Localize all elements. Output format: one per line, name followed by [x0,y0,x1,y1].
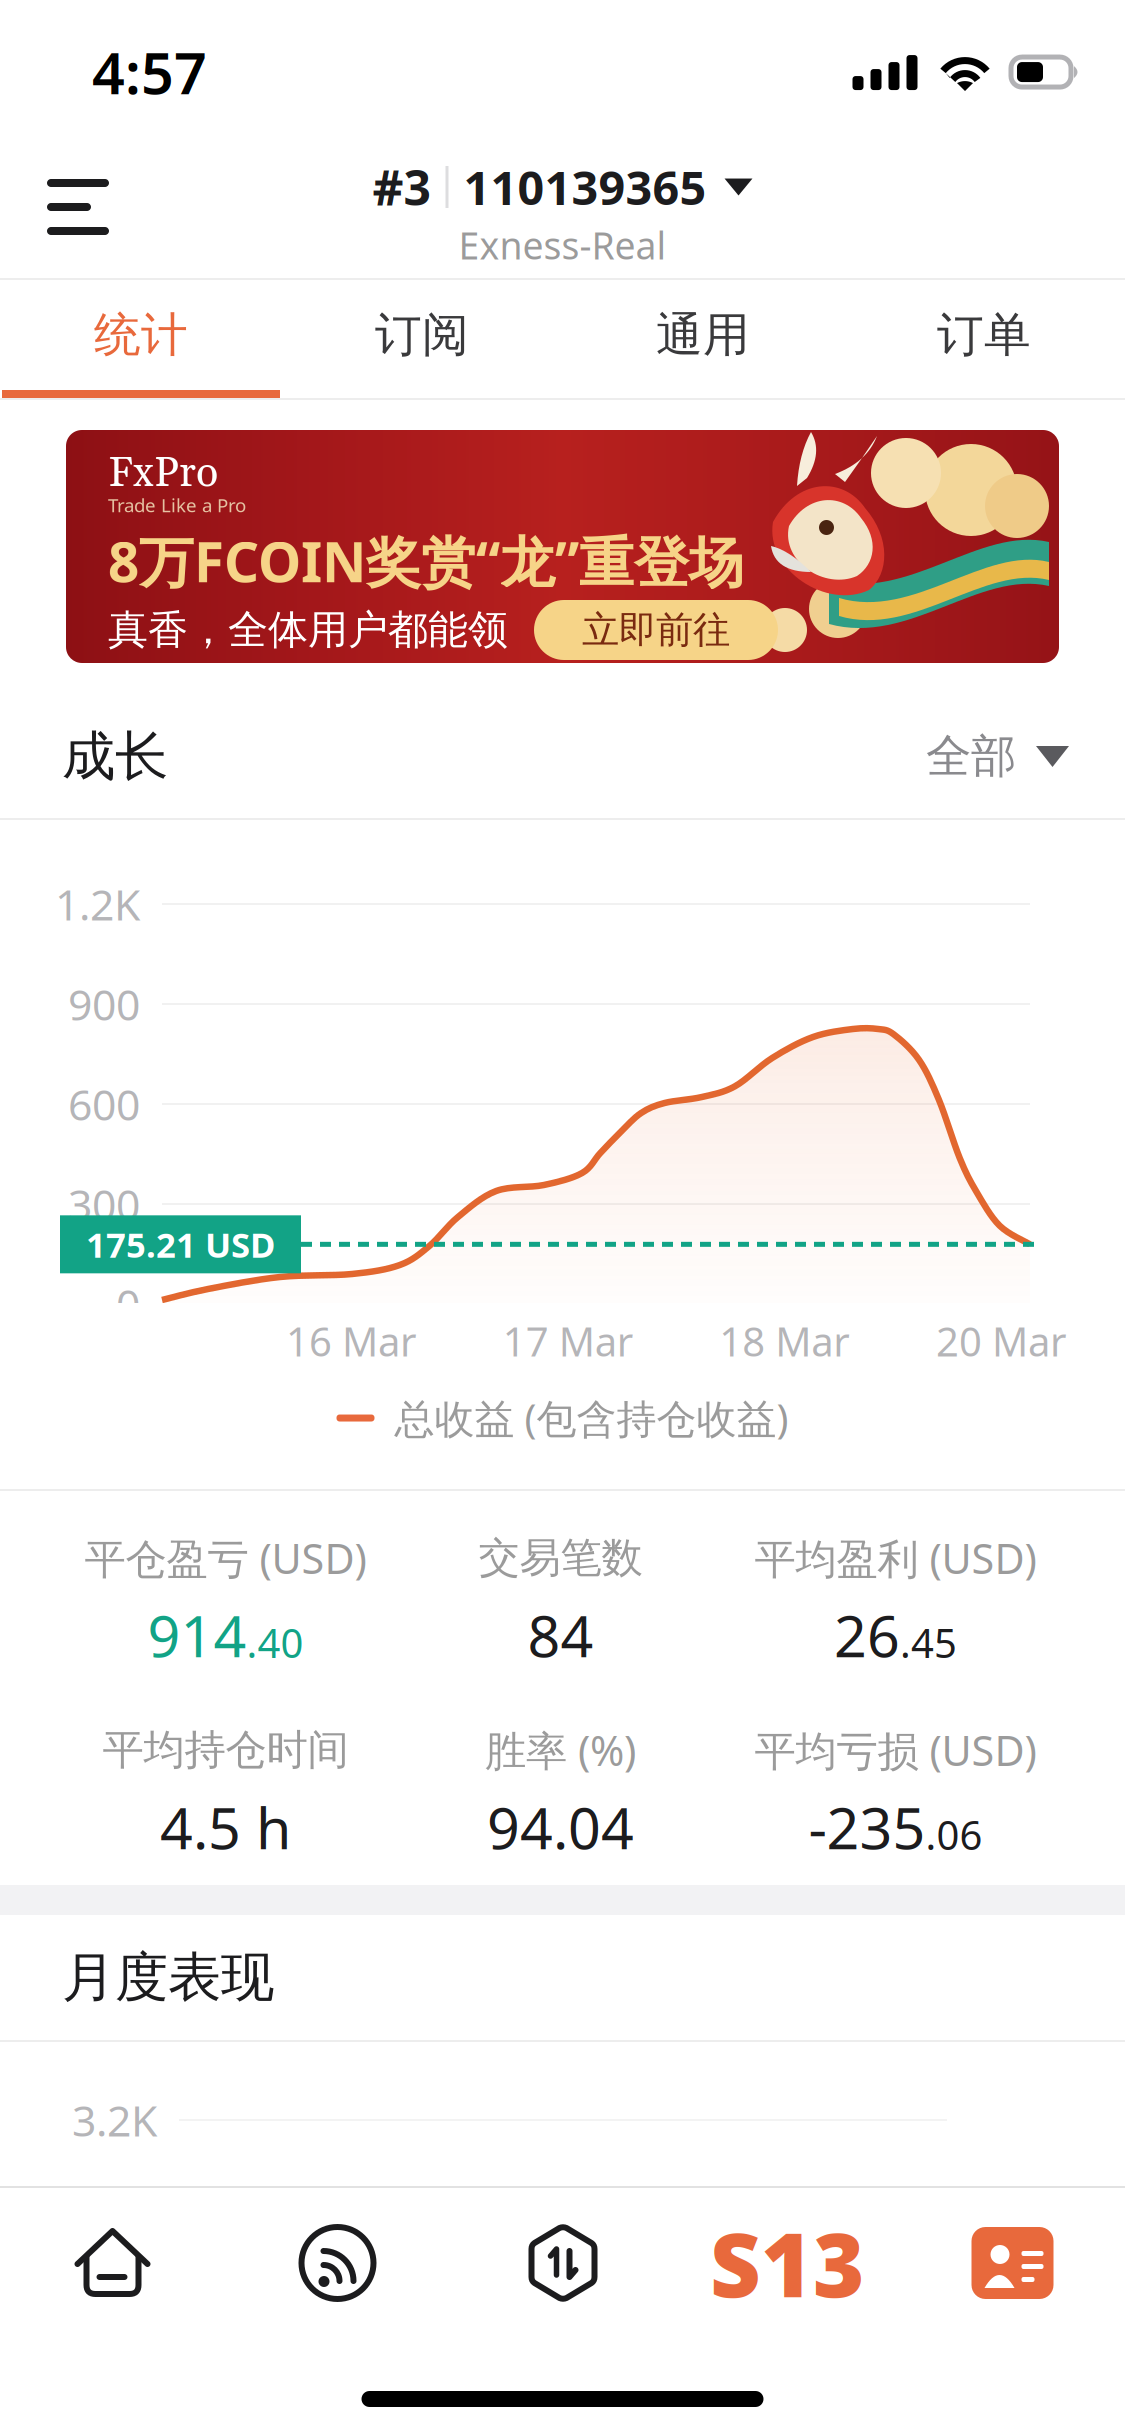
button[interactable]: FxPro [66,430,1059,663]
staticText: #3 [372,155,430,219]
staticText: 统计 [94,306,188,364]
staticText: 平均亏损 (USD) [754,1723,1036,1777]
button[interactable]: 全部 [926,695,1069,818]
staticText: S13 [710,2205,865,2321]
staticText: 通用 [656,306,750,364]
staticText: 4:57 [92,34,207,110]
staticText: 8万FCOIN奖赏“龙”重登场 [108,525,744,597]
staticText: 94.04 [487,1789,634,1865]
button[interactable]: 订单 [843,280,1124,398]
staticText: 胜率 (%) [485,1723,636,1777]
button[interactable]: Menu [47,130,159,278]
staticText: 4.5 h [160,1789,291,1865]
button[interactable]: #3 [0,130,1125,278]
staticText: .40 [246,1616,303,1669]
staticText: 300 [68,1176,140,1232]
staticText: 全部 [926,729,1016,784]
staticText: 交易笔数 [478,1533,642,1583]
staticText: 订单 [937,306,1031,364]
staticText: 0 [116,1276,140,1332]
staticText: 成长 [62,724,168,789]
button[interactable]: 统计 [0,280,281,398]
staticText: 84 [527,1597,593,1673]
staticText: 18 Mar [719,1314,850,1367]
staticText: 月度表现 [62,1945,274,2010]
staticText: 26 [834,1597,900,1673]
button[interactable]: S13 [675,2204,900,2322]
staticText: 立即前往 [582,607,730,653]
staticText: 600 [68,1076,140,1132]
staticText: 900 [68,976,140,1032]
staticText: 16 Mar [286,1314,417,1367]
staticText: 3.2K [72,2092,157,2148]
staticText: Trade Like a Pro [108,493,246,517]
staticText: 真香，全体用户都能领 [108,605,508,654]
staticText: .06 [925,1808,982,1861]
staticText: 914 [147,1597,246,1673]
staticText: -235 [808,1789,925,1865]
staticText: 订阅 [375,306,469,364]
staticText: 17 Mar [503,1314,634,1367]
staticText: 110139365 [463,156,706,218]
staticText: 平均持仓时间 [102,1725,348,1775]
button[interactable]: Trade [450,2204,675,2322]
staticText: 175.21 USD [86,1221,275,1267]
staticText: 总收益 (包含持仓收益) [394,1391,788,1444]
staticText: 平均盈利 (USD) [754,1531,1036,1585]
staticText: 1.2K [55,876,140,932]
button[interactable]: Profile [900,2204,1125,2322]
staticText: .45 [900,1616,957,1669]
button[interactable]: 通用 [562,280,843,398]
staticText: 20 Mar [936,1314,1067,1367]
staticText: FxPro [108,448,218,500]
button[interactable]: 订阅 [281,280,562,398]
staticText: 平仓盈亏 (USD) [84,1531,366,1585]
button[interactable]: Home [0,2204,225,2322]
staticText: Exness-Real [458,220,666,270]
button[interactable]: Quotes [225,2204,450,2322]
